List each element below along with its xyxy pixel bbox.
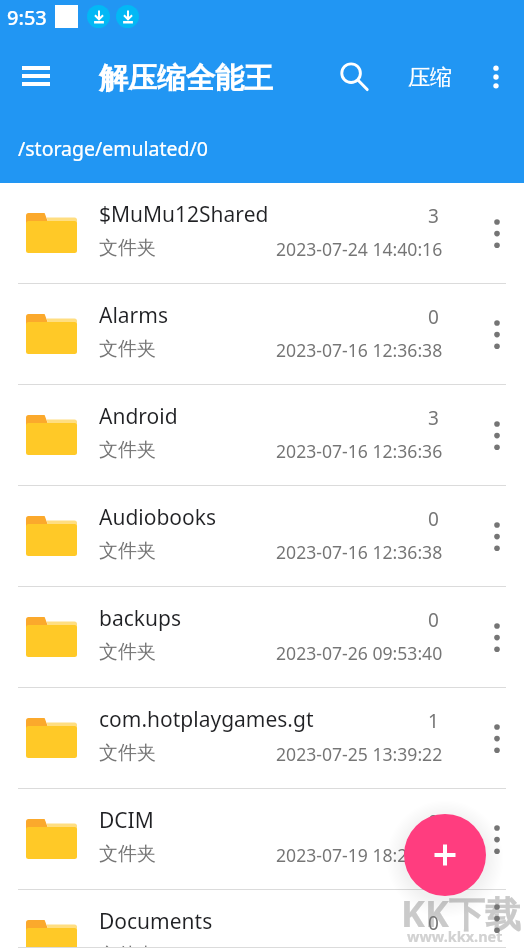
button[interactable]: Add (404, 814, 486, 896)
staticText: 2023-07-16 12:36:38 (276, 338, 443, 362)
staticText: 2023-07-16 12:36:36 (276, 439, 443, 463)
staticText: 2023-07-16 12:36:38 (276, 944, 443, 948)
button[interactable]: More (469, 183, 524, 284)
staticText: $MuMu12Shared (99, 200, 269, 229)
staticText: 文件夹 (99, 741, 156, 765)
staticText: 2023-07-26 09:53:40 (276, 641, 443, 665)
staticText: 2023-07-19 18:23:47 (276, 843, 443, 867)
staticText: 文件夹 (99, 438, 156, 462)
staticText: KK下载 (401, 889, 521, 938)
button[interactable]: More (469, 789, 524, 890)
staticText: 9:53 (7, 4, 47, 31)
button[interactable]: More (469, 284, 524, 385)
staticText: Documents (99, 907, 213, 936)
staticText: backups (99, 604, 181, 633)
button[interactable]: More options (469, 50, 523, 104)
button[interactable]: More (469, 688, 524, 789)
staticText: Audiobooks (99, 503, 217, 532)
button[interactable]: More (469, 486, 524, 587)
button[interactable]: Alarms (0, 284, 524, 385)
button[interactable]: More (469, 385, 524, 486)
staticText: 0 (428, 910, 439, 936)
staticText: 文件夹 (99, 337, 156, 361)
staticText: com.hotplaygames.gt (99, 705, 314, 734)
staticText: 压缩 (408, 64, 452, 92)
button[interactable]: Menu (8, 48, 64, 104)
staticText: Android (99, 402, 178, 431)
staticText: 0 (428, 506, 439, 532)
button[interactable]: com.hotplaygames.gt (0, 688, 524, 789)
button[interactable]: More (469, 587, 524, 688)
staticText: 3 (428, 405, 439, 431)
staticText: 0 (428, 304, 439, 330)
staticText: /storage/emulated/0 (18, 135, 208, 162)
staticText: 解压缩全能王 (99, 60, 273, 97)
staticText: 0 (428, 809, 439, 835)
staticText: Alarms (99, 301, 168, 330)
button[interactable]: Search (327, 50, 381, 104)
staticText: 0 (428, 607, 439, 633)
staticText: www.kkx.net (407, 926, 503, 946)
button[interactable]: Android (0, 385, 524, 486)
staticText: DCIM (99, 806, 154, 835)
button[interactable]: $MuMu12Shared (0, 183, 524, 284)
staticText: 2023-07-25 13:39:22 (276, 742, 443, 766)
button[interactable]: Documents (0, 890, 524, 948)
button[interactable]: More (469, 890, 524, 948)
button[interactable]: Audiobooks (0, 486, 524, 587)
staticText: 文件夹 (99, 539, 156, 563)
staticText: 1 (428, 708, 439, 734)
staticText: 文件夹 (99, 640, 156, 664)
staticText: 文件夹 (99, 236, 156, 260)
staticText: 文件夹 (99, 943, 156, 948)
staticText: 2023-07-16 12:36:38 (276, 540, 443, 564)
staticText: 2023-07-24 14:40:16 (276, 237, 443, 261)
staticText: 文件夹 (99, 842, 156, 866)
staticText: 3 (428, 203, 439, 229)
button[interactable]: backups (0, 587, 524, 688)
button[interactable]: DCIM (0, 789, 524, 890)
button[interactable]: 压缩 (396, 50, 464, 104)
